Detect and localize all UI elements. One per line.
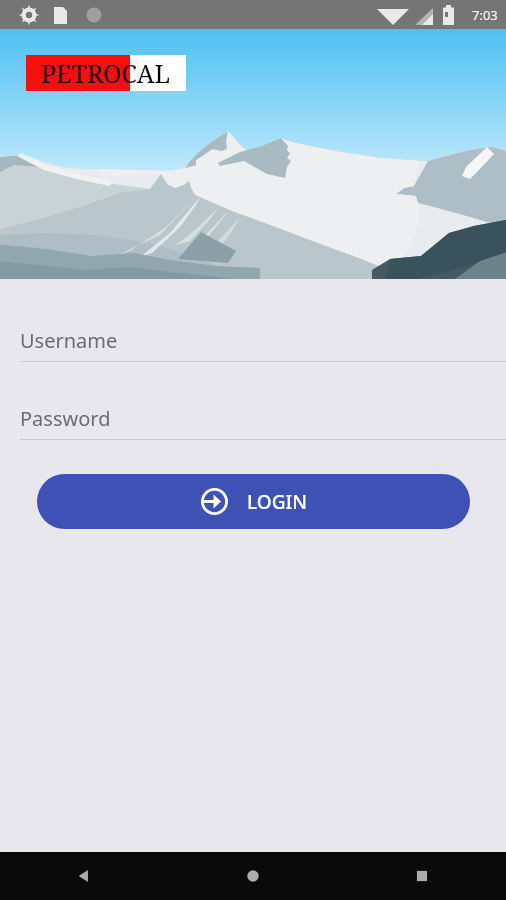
button[interactable]: Home — [168, 852, 337, 900]
button[interactable]: Username — [0, 327, 506, 362]
staticText: PETROCAL — [41, 56, 171, 90]
staticText: 7:03 — [472, 6, 498, 24]
button[interactable]: Back — [0, 852, 168, 900]
staticText: Username — [20, 327, 118, 354]
staticText: Password — [20, 405, 111, 432]
button[interactable]: Recent apps — [337, 852, 506, 900]
staticText: LOGIN — [247, 489, 307, 515]
button[interactable]: LOGIN — [37, 474, 470, 529]
button[interactable]: Password — [0, 405, 506, 440]
